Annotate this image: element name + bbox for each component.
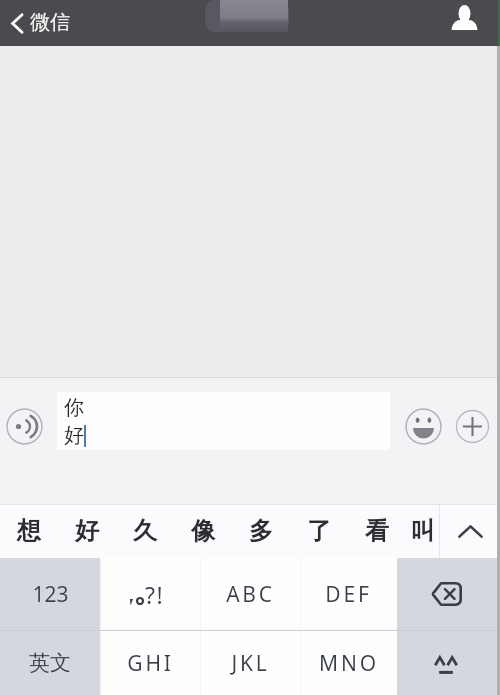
button[interactable]: 像 <box>174 504 232 558</box>
button[interactable]: ?! <box>100 558 200 630</box>
button[interactable]: 想 <box>0 504 58 558</box>
staticText: ABC <box>226 580 275 609</box>
staticText: 像 <box>191 516 215 546</box>
staticText: 叫 <box>411 516 435 546</box>
staticText: 多 <box>249 516 273 546</box>
staticText: GHI <box>127 649 174 678</box>
staticText: 看 <box>365 516 389 546</box>
button[interactable]: More options <box>454 408 491 445</box>
button[interactable]: 你 <box>57 392 390 450</box>
button[interactable]: 久 <box>116 504 174 558</box>
button[interactable]: Backspace <box>397 558 500 630</box>
staticText: ?! <box>145 579 165 610</box>
button[interactable]: Voice input <box>6 408 43 445</box>
button[interactable]: Chat info <box>448 1 480 33</box>
staticText: MNO <box>319 649 379 678</box>
button[interactable]: 好 <box>58 504 116 558</box>
staticText: 久 <box>133 516 157 546</box>
button[interactable]: Back to 微信 <box>11 0 70 46</box>
button[interactable]: JKL <box>200 631 300 695</box>
button[interactable]: Shift <box>397 631 500 695</box>
button[interactable]: 多 <box>232 504 290 558</box>
button[interactable]: 英文 <box>0 631 100 695</box>
button[interactable]: ABC <box>200 558 300 630</box>
button[interactable]: DEF <box>300 558 397 630</box>
button[interactable]: 了 <box>290 504 348 558</box>
staticText: 微信 <box>30 10 70 35</box>
button[interactable]: 123 <box>0 558 100 630</box>
staticText: 想 <box>17 516 41 546</box>
button[interactable]: Emoji <box>405 408 442 445</box>
button[interactable]: 看 <box>348 504 406 558</box>
staticText: 123 <box>32 580 69 609</box>
staticText: DEF <box>325 580 372 609</box>
button[interactable]: 叫 <box>406 504 439 558</box>
button[interactable]: GHI <box>100 631 200 695</box>
staticText: 英文 <box>29 650 71 676</box>
staticText: 你 <box>64 395 84 420</box>
button[interactable]: MNO <box>300 631 397 695</box>
staticText: JKL <box>231 649 270 678</box>
staticText: 好 <box>64 423 84 448</box>
staticText: 了 <box>307 516 331 546</box>
button[interactable]: Show more candidates <box>440 504 500 558</box>
staticText: 好 <box>75 516 99 546</box>
